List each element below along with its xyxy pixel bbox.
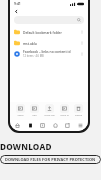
button[interactable]: Home <box>13 121 22 130</box>
button[interactable]: mst.ablu <box>10 37 88 48</box>
staticText: Move to <box>60 114 69 117</box>
staticText: 9:41 <box>14 1 21 6</box>
button[interactable]: Tabs <box>63 121 72 130</box>
staticText: DOWNLOAD FILES FOR PRIVACY PROTECTION <box>5 157 96 162</box>
button[interactable]: Move to <box>57 104 71 117</box>
button[interactable]: DOWNLOAD FILES FOR PRIVACY PROTECTION <box>5 157 96 162</box>
button[interactable]: Delete <box>71 104 85 117</box>
button[interactable] <box>14 16 84 24</box>
staticText: Facebook – links no content id <box>23 49 71 53</box>
button[interactable]: Menu <box>76 121 85 130</box>
staticText: Move Top <box>44 114 55 117</box>
button[interactable]: Default bookmark folder <box>10 26 88 37</box>
button[interactable]: Facebook – links no content id <box>10 48 88 59</box>
button[interactable]: Share <box>13 104 27 117</box>
staticText: DOWNLOAD MANAGEMENT <box>0 141 101 152</box>
button[interactable]: Bookmarks <box>26 121 35 130</box>
button[interactable]: Shield <box>51 121 60 130</box>
staticText: 12 items · 4.6 MB <box>23 54 44 58</box>
button[interactable]: Back <box>14 7 88 16</box>
button[interactable]: Move Top <box>42 104 56 117</box>
button[interactable]: Edit <box>27 104 41 117</box>
button[interactable]: Downloads <box>38 121 47 130</box>
staticText: mst.ablu <box>23 41 37 45</box>
staticText: Delete <box>75 114 82 117</box>
staticText: Share <box>17 114 24 117</box>
staticText: Edit <box>32 114 37 117</box>
staticText: Default bookmark folder <box>23 30 62 34</box>
